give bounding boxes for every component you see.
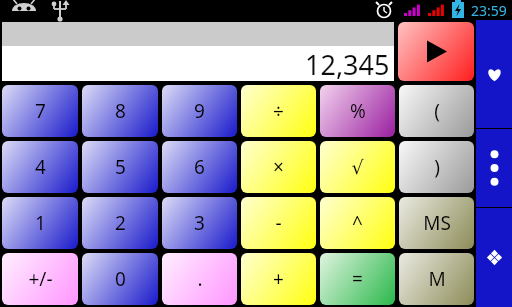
staticText: ( <box>434 98 440 124</box>
button[interactable]: M <box>399 253 474 305</box>
button[interactable]: +/- <box>2 253 78 305</box>
staticText: 1 <box>35 210 46 236</box>
staticText: = <box>352 266 363 292</box>
button[interactable]: + <box>241 253 316 305</box>
button[interactable]: Favourites <box>476 20 512 128</box>
button[interactable]: MS <box>399 197 474 249</box>
staticText: % <box>350 98 366 124</box>
button[interactable]: × <box>241 141 316 193</box>
button[interactable]: - <box>241 197 316 249</box>
staticText: 3 <box>194 210 205 236</box>
staticText: ) <box>434 154 440 180</box>
button[interactable]: % <box>320 85 395 137</box>
button[interactable]: 8 <box>82 85 158 137</box>
staticText: 9 <box>194 98 205 124</box>
button[interactable]: ) <box>399 141 474 193</box>
staticText: √ <box>351 156 364 178</box>
staticText: MS <box>423 210 451 236</box>
staticText: 7 <box>35 98 46 124</box>
button[interactable]: = <box>320 253 395 305</box>
button[interactable]: √ <box>320 141 395 193</box>
button[interactable]: 4 <box>2 141 78 193</box>
staticText: - <box>275 210 282 236</box>
button[interactable]: 9 <box>162 85 237 137</box>
button[interactable]: . <box>162 253 237 305</box>
staticText: ^ <box>352 210 363 236</box>
button[interactable]: ( <box>399 85 474 137</box>
staticText: 5 <box>115 154 126 180</box>
button[interactable]: 6 <box>162 141 237 193</box>
button[interactable]: 3 <box>162 197 237 249</box>
button[interactable]: 5 <box>82 141 158 193</box>
button[interactable]: 0 <box>82 253 158 305</box>
staticText: 0 <box>115 266 126 292</box>
button[interactable]: Apps <box>476 208 512 307</box>
button[interactable]: ^ <box>320 197 395 249</box>
staticText: M <box>428 266 446 292</box>
button[interactable]: 2 <box>82 197 158 249</box>
staticText: ÷ <box>273 98 284 124</box>
button[interactable]: More options <box>476 129 512 207</box>
staticText: × <box>273 154 284 180</box>
staticText: + <box>273 266 284 292</box>
staticText: 4 <box>35 154 46 180</box>
staticText: . <box>197 266 203 292</box>
staticText: 23:59 <box>471 1 507 20</box>
staticText: +/- <box>28 266 53 292</box>
staticText: 8 <box>115 98 126 124</box>
staticText: 12,345 <box>305 46 390 81</box>
staticText: 6 <box>194 154 205 180</box>
button[interactable]: 1 <box>2 197 78 249</box>
button[interactable]: Run <box>398 22 474 81</box>
button[interactable]: ÷ <box>241 85 316 137</box>
staticText: 2 <box>115 210 126 236</box>
button[interactable]: 7 <box>2 85 78 137</box>
